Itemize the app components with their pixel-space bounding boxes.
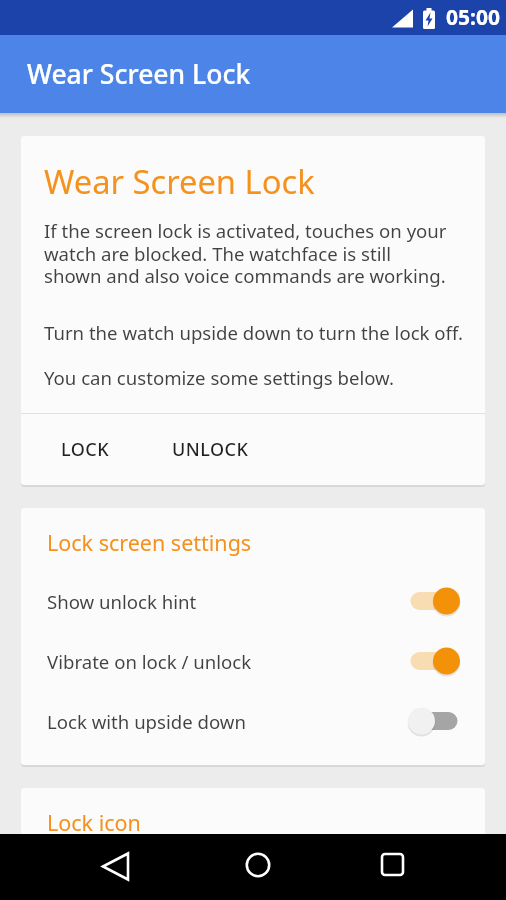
staticText: UNLOCK xyxy=(172,437,249,462)
staticText: Wear Screen Lock xyxy=(44,159,315,204)
staticText: If the screen lock is activated, touches… xyxy=(44,218,447,288)
staticText: Lock with upside down xyxy=(47,709,246,734)
button[interactable] xyxy=(409,706,459,736)
staticText: Turn the watch upside down to turn the l… xyxy=(44,320,463,345)
button[interactable]: Show unlock hint xyxy=(21,571,485,631)
staticText: You can customize some settings below. xyxy=(44,365,394,390)
staticText: Vibrate on lock / unlock xyxy=(47,649,252,674)
button[interactable]: Lock with upside down xyxy=(21,691,485,751)
staticText: Show unlock hint xyxy=(47,589,197,614)
button[interactable]: UNLOCK xyxy=(156,425,265,474)
button[interactable] xyxy=(168,834,337,900)
staticText: LOCK xyxy=(61,437,110,462)
button[interactable] xyxy=(409,646,459,676)
staticText: Wear Screen Lock xyxy=(27,56,251,92)
button[interactable]: Vibrate on lock / unlock xyxy=(21,631,485,691)
button[interactable] xyxy=(0,834,168,900)
button[interactable]: LOCK xyxy=(45,425,126,474)
staticText: 05:00 xyxy=(446,3,500,32)
button[interactable] xyxy=(409,586,459,616)
button[interactable] xyxy=(337,834,506,900)
staticText: Lock icon xyxy=(47,808,141,837)
staticText: Lock screen settings xyxy=(47,528,252,557)
